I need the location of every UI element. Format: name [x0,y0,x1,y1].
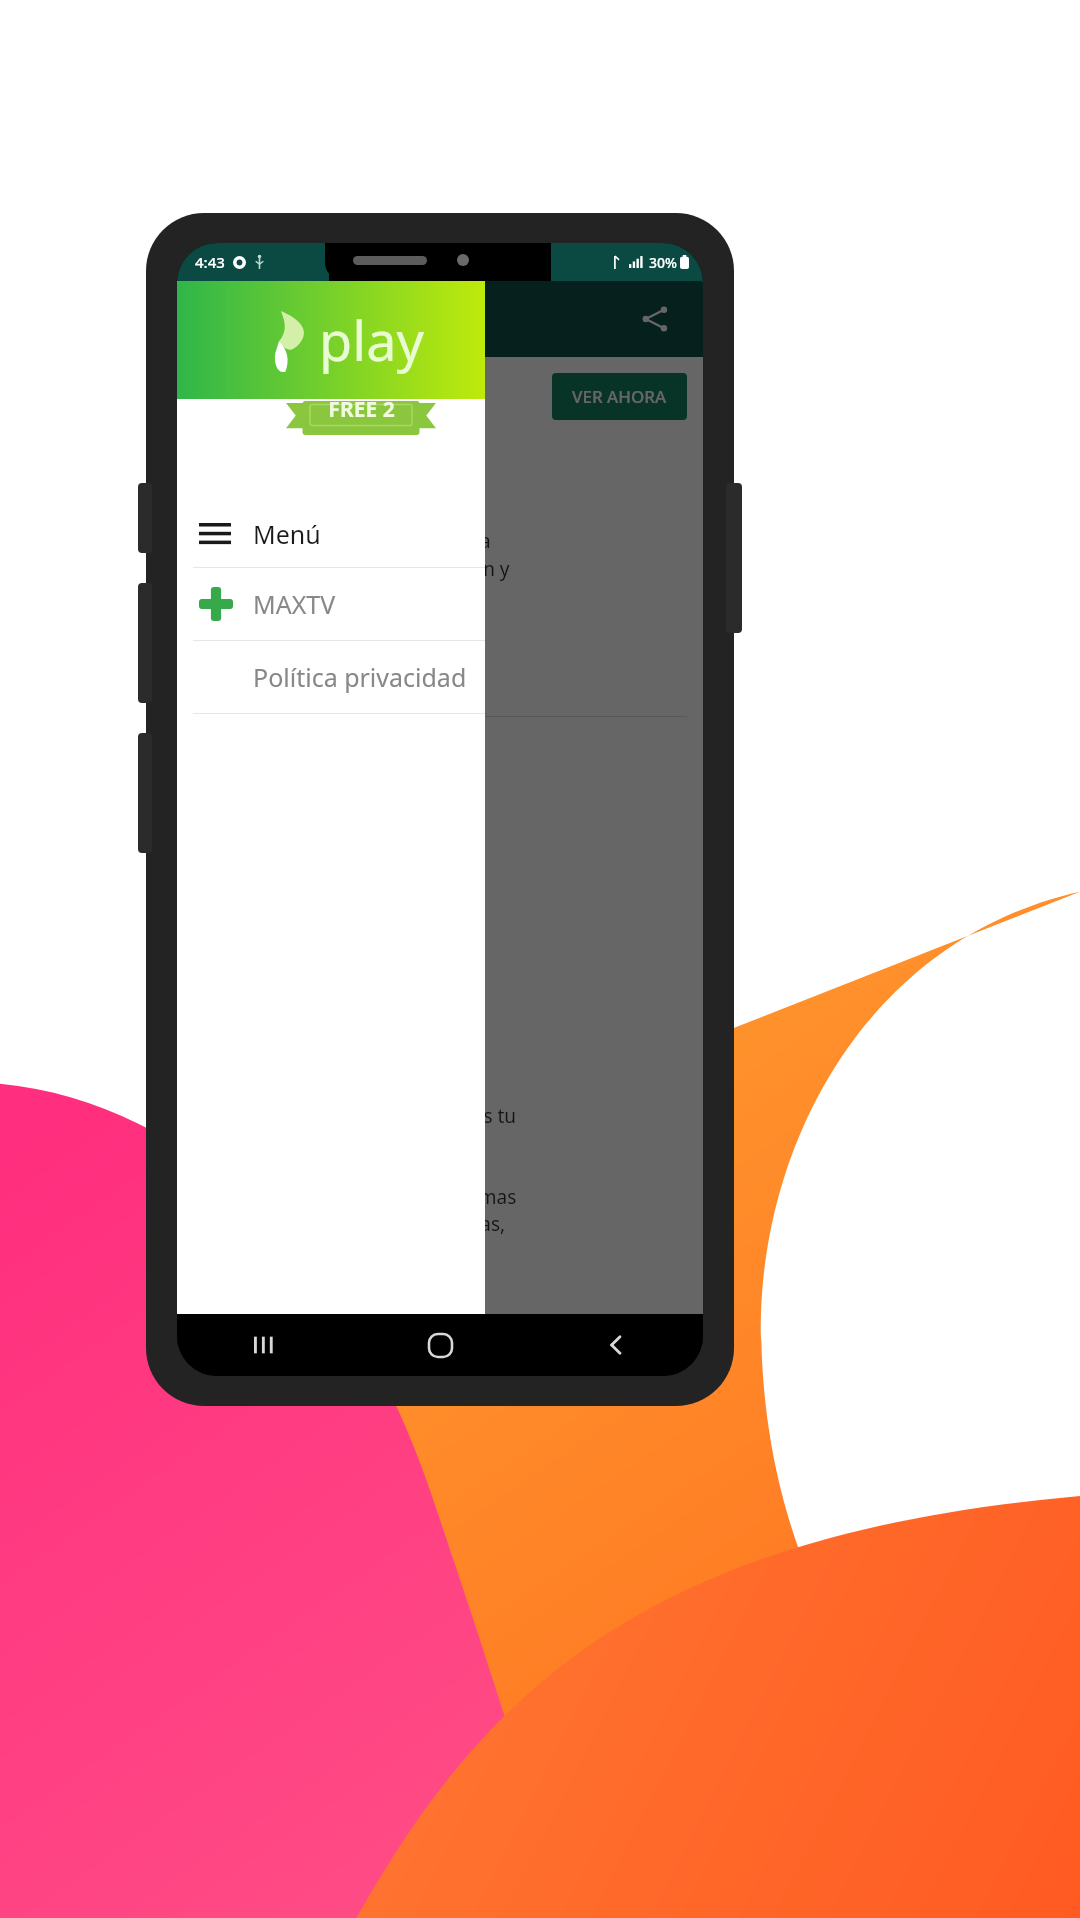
staticText: Menú [253,517,321,551]
staticText: Esta aplicación utiliza la [193,630,403,656]
staticText: • Canales: Accede a una gran variedad de… [193,806,517,1314]
button[interactable]: Back [528,1314,703,1376]
button[interactable]: Menú [177,501,485,567]
staticText: Política privacidad [253,660,467,694]
staticText: 4:43 [195,252,225,272]
button[interactable]: VER AHORA [552,373,687,420]
staticText: Ahora puedes hacer streaming utilizando … [193,444,510,610]
button[interactable]: MAXTV [177,568,485,640]
staticText: MAXTV [253,587,336,621]
button[interactable]: Política privacidad [177,641,485,713]
staticText: 30% [649,253,677,272]
button[interactable]: Recents [177,1314,353,1376]
staticText: VER AHORA [572,385,667,408]
staticText: FREE 2 [328,395,395,424]
button[interactable]: Home [353,1314,528,1376]
staticText: play [319,303,424,377]
button[interactable]: Share [633,297,677,341]
